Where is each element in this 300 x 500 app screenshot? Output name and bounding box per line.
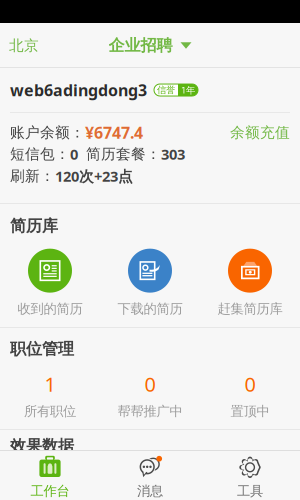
staticText: 1年 bbox=[181, 84, 195, 96]
staticText: 置顶中 bbox=[230, 403, 269, 420]
staticText: 赶集简历库 bbox=[217, 301, 282, 317]
button[interactable]: 消息 bbox=[100, 456, 200, 499]
staticText: 余额充值 bbox=[230, 123, 290, 141]
staticText: 效果数据 bbox=[10, 436, 74, 456]
staticText: web6adingdong3 bbox=[10, 79, 147, 101]
staticText: 消息 bbox=[137, 483, 163, 499]
staticText: 简历套餐： bbox=[78, 145, 161, 163]
button[interactable]: 0 bbox=[200, 371, 300, 420]
staticText: 账户余额： bbox=[10, 123, 85, 141]
button[interactable]: 企业招聘 bbox=[108, 26, 191, 65]
button[interactable]: 赶集简历库 bbox=[200, 249, 300, 317]
staticText: 工作台 bbox=[30, 483, 69, 499]
button[interactable]: 工作台 bbox=[0, 456, 100, 499]
staticText: 0 bbox=[244, 371, 255, 397]
staticText: 工具 bbox=[237, 483, 263, 499]
staticText: ¥6747.4 bbox=[85, 122, 143, 143]
staticText: 所有职位 bbox=[24, 403, 76, 420]
staticText: 303 bbox=[161, 144, 185, 164]
button[interactable]: 工具 bbox=[200, 456, 300, 499]
button[interactable]: 0 bbox=[100, 371, 200, 420]
staticText: 下载的简历 bbox=[117, 301, 182, 317]
staticText: 0 bbox=[144, 371, 155, 397]
staticText: 收到的简历 bbox=[17, 301, 82, 317]
staticText: 刷新： bbox=[10, 167, 55, 185]
staticText: 短信包： bbox=[10, 145, 70, 163]
staticText: 120次+23点 bbox=[55, 166, 133, 186]
button[interactable]: 下载的简历 bbox=[100, 249, 200, 317]
staticText: 北京 bbox=[9, 36, 39, 54]
staticText: 职位管理 bbox=[10, 339, 74, 359]
staticText: 1 bbox=[44, 371, 55, 397]
button[interactable]: 北京 bbox=[0, 26, 48, 64]
staticText: 简历库 bbox=[10, 216, 58, 236]
staticText: 信誉 bbox=[157, 84, 175, 96]
button[interactable]: 收到的简历 bbox=[0, 249, 100, 317]
staticText: 帮帮推广中 bbox=[117, 403, 182, 420]
staticText: 0 bbox=[70, 144, 78, 164]
staticText: 企业招聘 bbox=[108, 36, 172, 55]
button[interactable]: 余额充值 bbox=[230, 123, 290, 141]
button[interactable]: 1 bbox=[0, 371, 100, 420]
